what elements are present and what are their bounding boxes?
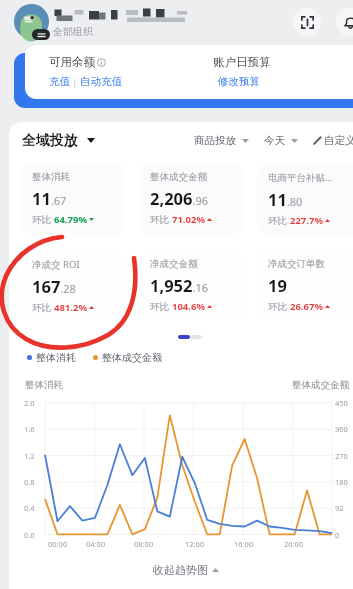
- button[interactable]: 修改预算: [218, 75, 260, 88]
- button[interactable]: 充值: [49, 75, 70, 88]
- staticText: 64.79%: [54, 213, 87, 226]
- staticText: 收起趋势图: [153, 563, 208, 577]
- staticText: 26.67%: [290, 300, 323, 313]
- staticText: 自定义: [324, 134, 353, 147]
- staticText: 可用余额: [49, 55, 95, 69]
- staticText: 71.02%: [172, 213, 205, 226]
- button[interactable]: 电商平台补贴...: [257, 164, 353, 234]
- staticText: 全部组织: [53, 25, 93, 38]
- staticText: 环比: [268, 301, 287, 313]
- staticText: 净成交订单数: [268, 258, 325, 270]
- staticText: 账户日预算: [213, 55, 271, 69]
- staticText: 0.4: [24, 503, 35, 513]
- staticText: 今天: [264, 134, 285, 147]
- button[interactable]: Notifications: [336, 8, 353, 36]
- button[interactable]: 全域投放: [22, 132, 95, 149]
- staticText: 450: [335, 398, 348, 408]
- button[interactable]: 净成交金额: [139, 251, 243, 321]
- staticText: 全域投放: [22, 132, 78, 149]
- staticText: 92: [335, 503, 344, 513]
- button[interactable]: 自定义: [313, 134, 353, 147]
- staticText: 360: [335, 424, 348, 434]
- staticText: 11.67: [32, 187, 67, 209]
- staticText: 481.2%: [54, 301, 87, 314]
- staticText: 整体消耗: [25, 379, 63, 391]
- staticText: 整体消耗: [32, 171, 70, 183]
- staticText: 环比: [32, 302, 51, 314]
- staticText: 整体成交金额: [150, 171, 207, 183]
- staticText: 270: [335, 451, 348, 461]
- staticText: 227.7%: [290, 214, 323, 227]
- staticText: 04:00: [86, 539, 106, 549]
- staticText: 00:00: [48, 539, 68, 549]
- button[interactable]: Profile: [14, 4, 49, 39]
- button[interactable]: 整体成交金额: [139, 164, 243, 234]
- staticText: 167.28: [32, 275, 76, 297]
- button[interactable]: 整体消耗: [21, 164, 125, 234]
- staticText: 2.0: [24, 398, 35, 408]
- button[interactable]: 收起趋势图: [9, 560, 353, 580]
- button[interactable]: 商品投放: [194, 134, 249, 147]
- staticText: 1.6: [24, 424, 35, 434]
- staticText: 2,206.96: [150, 187, 208, 209]
- staticText: 11.80: [268, 188, 303, 210]
- staticText: 电商平台补贴...: [268, 171, 333, 184]
- staticText: 104.6%: [172, 300, 205, 313]
- staticText: 12:00: [185, 539, 205, 549]
- staticText: 08:00: [134, 539, 154, 549]
- staticText: 整体成交金额: [102, 351, 162, 364]
- button[interactable]: 净成交订单数: [257, 251, 353, 321]
- staticText: 0: [335, 530, 340, 540]
- staticText: 整体成交金额: [292, 379, 349, 391]
- staticText: 20:00: [284, 539, 304, 549]
- staticText: 1,952.16: [150, 274, 208, 296]
- staticText: 环比: [150, 214, 169, 226]
- staticText: 0.8: [24, 477, 35, 487]
- button[interactable]: 净成交 ROI: [21, 251, 125, 321]
- staticText: 净成交 ROI: [32, 258, 80, 271]
- button[interactable]: 自动充值: [80, 75, 122, 88]
- button[interactable]: Scan: [293, 8, 321, 36]
- staticText: 环比: [32, 214, 51, 226]
- staticText: 1.2: [24, 451, 35, 461]
- staticText: 19: [268, 274, 287, 296]
- staticText: 环比: [150, 301, 169, 313]
- staticText: 16:00: [234, 539, 254, 549]
- staticText: 整体消耗: [36, 351, 76, 364]
- staticText: 净成交金额: [150, 258, 198, 270]
- staticText: 180: [335, 477, 348, 487]
- button[interactable]: 今天: [264, 134, 298, 147]
- staticText: |: [70, 76, 80, 88]
- staticText: 商品投放: [194, 134, 236, 147]
- staticText: 环比: [268, 215, 287, 227]
- staticText: 0.0: [24, 530, 35, 540]
